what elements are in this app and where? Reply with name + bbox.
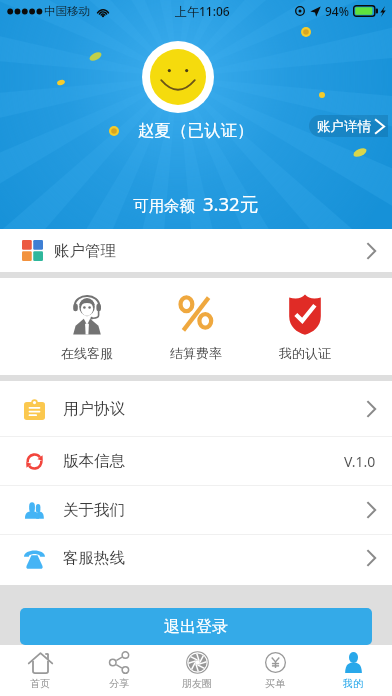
- staticText: 我的: [343, 677, 363, 690]
- staticText: 上午11:06: [175, 3, 230, 19]
- staticText: 94%: [325, 3, 349, 19]
- staticText: 账户管理: [54, 241, 116, 261]
- staticText: 朋友圈: [182, 677, 212, 690]
- button[interactable]: 在线客服: [33, 278, 141, 375]
- button[interactable]: 我的: [314, 645, 392, 696]
- staticText: 客服热线: [63, 548, 125, 568]
- button[interactable]: 账户管理: [0, 229, 392, 272]
- button[interactable]: 版本信息: [0, 437, 392, 485]
- button[interactable]: 朋友圈: [158, 645, 236, 696]
- staticText: 版本信息: [63, 451, 125, 471]
- staticText: V.1.0: [344, 452, 376, 471]
- staticText: 账户详情: [317, 118, 371, 135]
- staticText: 用户协议: [63, 399, 125, 419]
- staticText: 中国移动: [44, 4, 90, 18]
- staticText: 结算费率: [170, 345, 222, 361]
- button[interactable]: 退出登录: [20, 608, 372, 645]
- button[interactable]: 客服热线: [0, 535, 392, 581]
- button[interactable]: 关于我们: [0, 486, 392, 534]
- staticText: 3.32元: [203, 191, 259, 216]
- staticText: 可用余额: [133, 196, 195, 216]
- staticText: 首页: [30, 677, 50, 690]
- button[interactable]: Profile avatar: [142, 41, 214, 113]
- staticText: 我的认证: [279, 345, 331, 361]
- staticText: 赵夏（已认证）: [138, 120, 254, 141]
- button[interactable]: 首页: [0, 645, 79, 696]
- staticText: 在线客服: [61, 345, 113, 361]
- staticText: 退出登录: [164, 617, 228, 637]
- staticText: 关于我们: [63, 500, 125, 520]
- button[interactable]: 用户协议: [0, 381, 392, 436]
- staticText: 买单: [265, 677, 285, 690]
- button[interactable]: 结算费率: [141, 278, 250, 375]
- button[interactable]: 分享: [79, 645, 158, 696]
- staticText: 分享: [109, 677, 129, 690]
- button[interactable]: 买单: [236, 645, 314, 696]
- button[interactable]: 账户详情: [309, 115, 388, 137]
- button[interactable]: 我的认证: [250, 278, 359, 375]
